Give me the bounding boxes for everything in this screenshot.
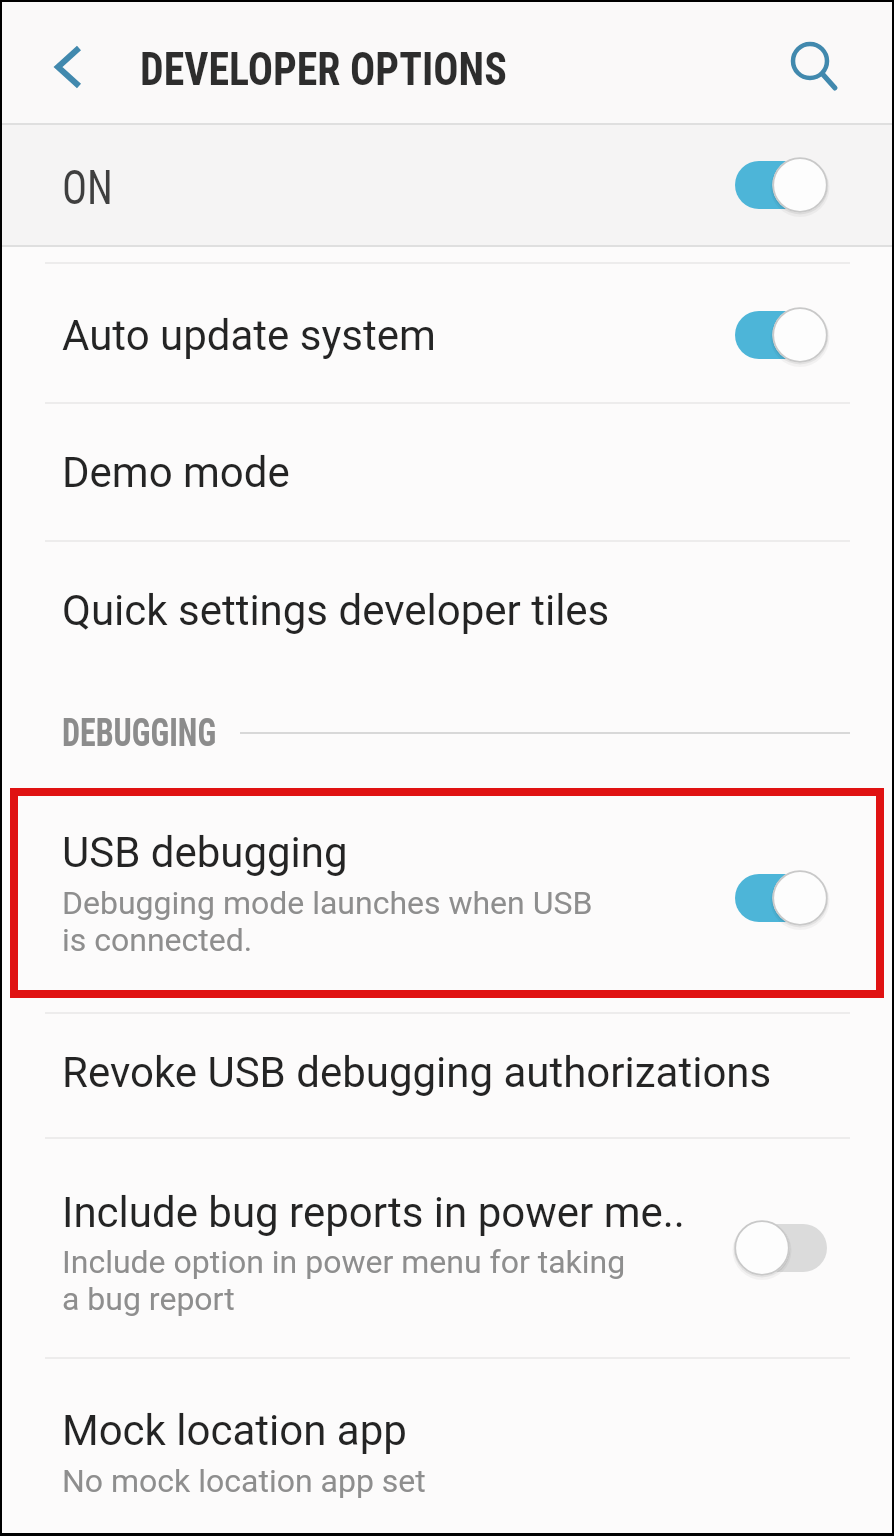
- staticText: Revoke USB debugging authorizations: [62, 1048, 772, 1097]
- staticText: Auto update system: [62, 311, 436, 360]
- staticText: ON: [62, 159, 113, 215]
- button[interactable]: Revoke USB debugging authorizations: [0, 1014, 894, 1137]
- staticText: Include option in power menu for taking: [62, 1243, 626, 1281]
- button[interactable]: Include bug reports in power me..: [0, 1139, 894, 1357]
- staticText: DEVELOPER OPTIONS: [140, 42, 508, 96]
- staticText: is connected.: [62, 921, 253, 959]
- button[interactable]: Quick settings developer tiles: [0, 542, 894, 678]
- staticText: Demo mode: [62, 448, 290, 497]
- staticText: DEBUGGING: [62, 711, 217, 756]
- button[interactable]: Auto update system: [0, 264, 894, 402]
- staticText: Quick settings developer tiles: [62, 586, 610, 635]
- staticText: USB debugging: [62, 828, 348, 877]
- button[interactable]: [776, 24, 860, 102]
- staticText: Mock location app: [62, 1406, 407, 1455]
- staticText: Debugging mode launches when USB: [62, 884, 593, 922]
- button[interactable]: [36, 29, 100, 105]
- button[interactable]: Demo mode: [0, 404, 894, 540]
- staticText: Include bug reports in power me..: [62, 1188, 685, 1237]
- button[interactable]: Mock location app: [0, 1359, 894, 1530]
- staticText: No mock location app set: [62, 1462, 426, 1500]
- staticText: a bug report: [62, 1280, 235, 1318]
- button[interactable]: USB debugging: [0, 798, 894, 1000]
- button[interactable]: ON: [0, 125, 894, 245]
